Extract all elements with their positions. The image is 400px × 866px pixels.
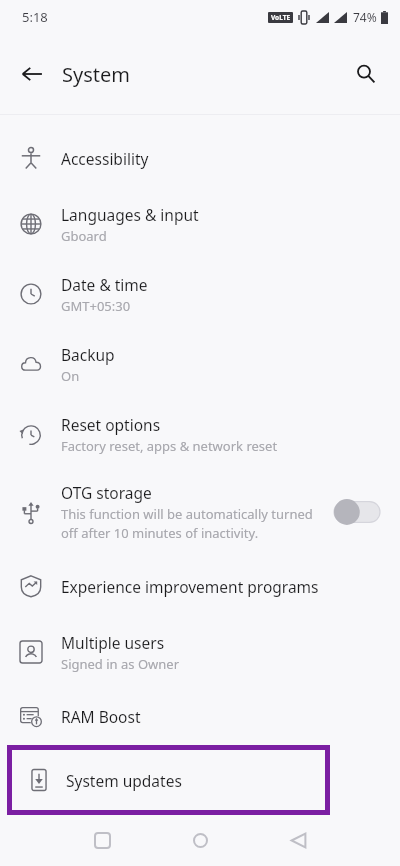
staticText: 74% (353, 9, 377, 25)
staticText: System updates (66, 770, 182, 791)
button[interactable]: Search (344, 52, 388, 96)
staticText: On (61, 367, 80, 385)
staticText: This function will be automatically turn… (61, 505, 326, 542)
button[interactable]: OTG storage toggle (334, 498, 380, 526)
button[interactable]: Date & time (0, 259, 400, 329)
staticText: OTG storage (61, 482, 152, 503)
staticText: Experience improvement programs (61, 576, 319, 597)
button[interactable]: RAM Boost (0, 687, 400, 745)
staticText: Gboard (61, 227, 107, 245)
staticText: RAM Boost (61, 706, 141, 727)
staticText: Factory reset, apps & network reset (61, 437, 278, 455)
staticText: Date & time (61, 274, 148, 295)
staticText: Accessibility (61, 148, 149, 169)
button[interactable]: Back (268, 815, 328, 866)
staticText: Languages & input (61, 204, 199, 225)
staticText: VoLTE (271, 13, 291, 22)
staticText: Backup (61, 344, 115, 365)
button[interactable]: System updates (12, 750, 325, 810)
button[interactable]: Back (10, 52, 54, 96)
button[interactable]: Reset options (0, 399, 400, 469)
button[interactable]: Experience improvement programs (0, 555, 400, 617)
button[interactable]: Home (170, 815, 230, 866)
staticText: System (62, 61, 130, 88)
staticText: Signed in as Owner (61, 655, 180, 673)
button[interactable]: Multiple users (0, 617, 400, 687)
button[interactable]: Accessibility (0, 127, 400, 189)
button[interactable]: Backup (0, 329, 400, 399)
staticText: Multiple users (61, 632, 165, 653)
button[interactable]: Recent apps (72, 815, 132, 866)
staticText: 5:18 (22, 8, 48, 26)
button[interactable]: OTG storage (0, 469, 400, 555)
button[interactable]: Languages & input (0, 189, 400, 259)
staticText: GMT+05:30 (61, 297, 131, 315)
staticText: Reset options (61, 414, 161, 435)
